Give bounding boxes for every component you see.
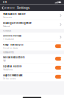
staticText: AUDIO & HAPTICS (3, 52, 14, 54)
staticText: 3 downloaded (3, 38, 14, 40)
staticText: Offline Voices (3, 34, 21, 37)
button[interactable]: Offline Voices (0, 33, 64, 41)
button[interactable]: Translation Mode (0, 11, 64, 20)
staticText: PLAYBACK (3, 30, 11, 32)
staticText: Spatial Audio (3, 65, 22, 68)
staticText: Leandro (4, 6, 15, 9)
staticText: Translation Mode (3, 13, 25, 16)
staticText: High (3, 59, 6, 62)
button[interactable]: Dialogue Intelligence (0, 20, 64, 29)
staticText: On key actions (3, 77, 16, 80)
staticText: Haptic Feedback (3, 74, 22, 77)
staticText: Noise Reduction (3, 56, 25, 59)
staticText: Balanced (3, 25, 10, 27)
button[interactable]: Keep Transcripts (0, 42, 64, 50)
button[interactable]: Spatial Audio (0, 63, 64, 72)
button[interactable]: Noise Reduction (0, 54, 64, 63)
staticText: Headphones (3, 68, 13, 71)
staticText: Settings (15, 6, 30, 10)
staticText: Stored on device (3, 47, 18, 49)
button[interactable]: Leandro (2, 5, 15, 10)
staticText: Keep Transcripts (3, 43, 23, 46)
staticText: Automatic (3, 16, 12, 18)
staticText: 9:41 (3, 1, 7, 4)
button[interactable]: Haptic Feedback (0, 72, 64, 81)
staticText: Dialogue Intelligence (3, 22, 31, 25)
